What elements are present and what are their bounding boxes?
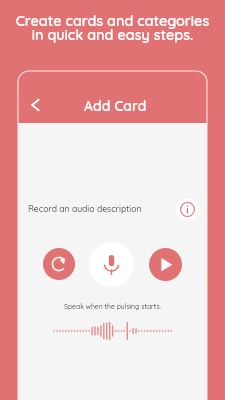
- button[interactable]: Back: [26, 96, 43, 113]
- button[interactable]: Restart recording: [43, 248, 75, 280]
- button[interactable]: Play recording: [149, 248, 182, 281]
- button[interactable]: Record audio: [89, 242, 134, 287]
- staticText: Record an audio description: [28, 203, 142, 214]
- staticText: Speak when the pulsing starts.: [18, 302, 207, 311]
- button[interactable]: Information: [176, 198, 198, 220]
- staticText: Add Card: [84, 97, 147, 114]
- staticText: Create cards and categories in quick and…: [0, 12, 225, 43]
